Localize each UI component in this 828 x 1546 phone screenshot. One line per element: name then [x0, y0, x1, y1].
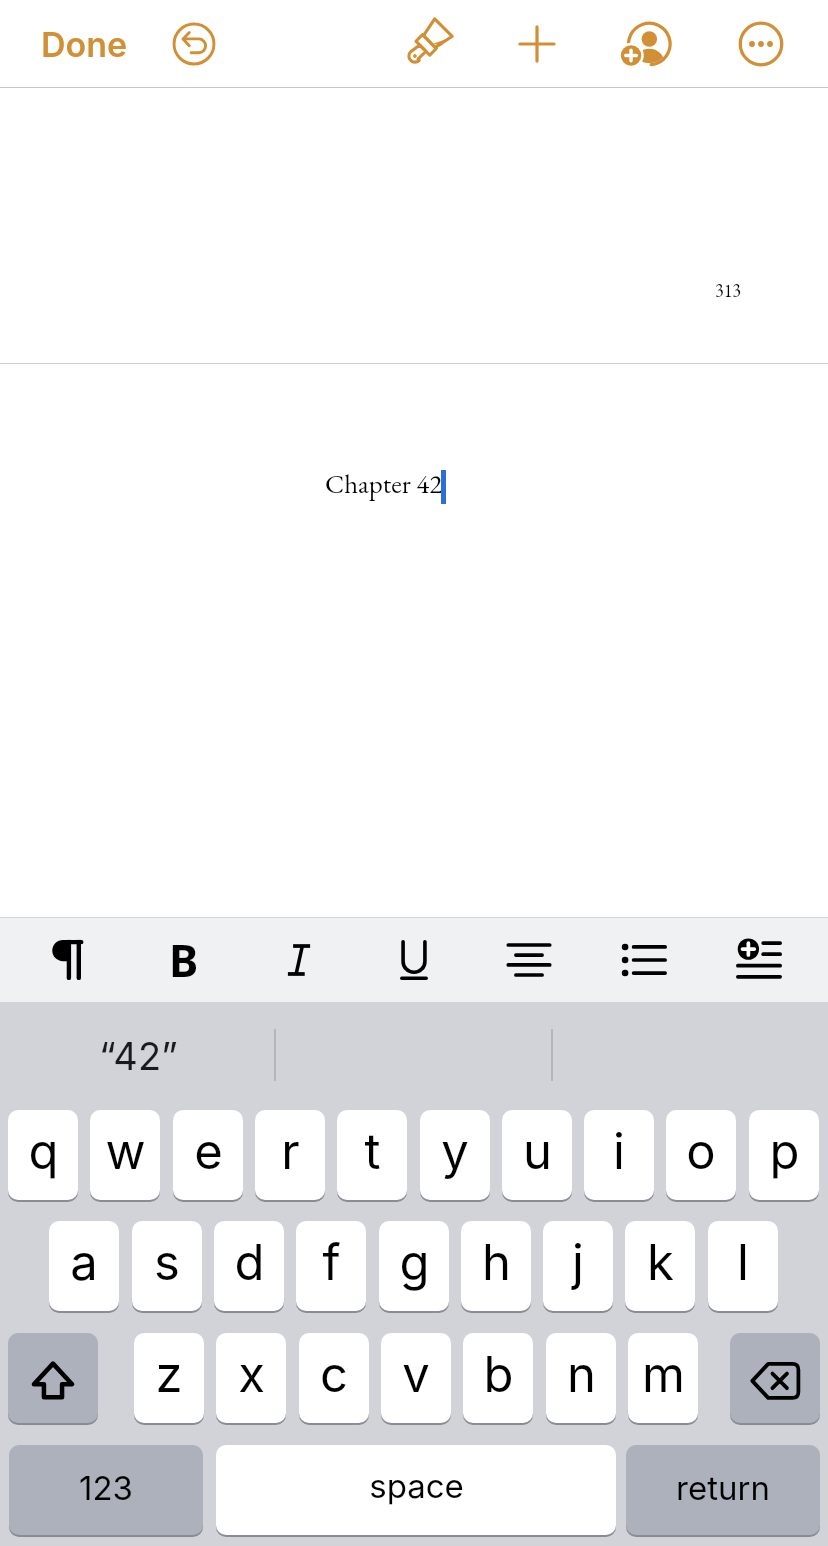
button[interactable]: z	[134, 1333, 204, 1423]
button[interactable]: e	[173, 1110, 243, 1200]
button[interactable]: x	[216, 1333, 286, 1423]
button[interactable]: m	[628, 1333, 698, 1423]
staticText: p	[769, 1122, 800, 1181]
button[interactable]: Bold	[127, 917, 241, 1002]
staticText: d	[234, 1233, 265, 1292]
staticText: B	[169, 930, 199, 990]
staticText: c	[320, 1345, 348, 1404]
staticText: Chapter 42	[325, 466, 443, 501]
button[interactable]: n	[546, 1333, 616, 1423]
staticText: o	[686, 1122, 716, 1181]
button[interactable]: b	[463, 1333, 533, 1423]
staticText: 313	[715, 279, 741, 302]
button[interactable]: More	[728, 11, 794, 77]
button[interactable]: r	[255, 1110, 325, 1200]
staticText: s	[154, 1233, 180, 1292]
staticText: h	[482, 1233, 511, 1292]
button[interactable]: c	[299, 1333, 369, 1423]
staticText: k	[647, 1233, 674, 1292]
button[interactable]: space	[216, 1445, 616, 1535]
button[interactable]: Insert	[504, 11, 570, 77]
button[interactable]: Bullet list	[587, 917, 701, 1002]
button[interactable]: Undo	[161, 11, 227, 77]
button[interactable]: i	[584, 1110, 654, 1200]
button[interactable]: h	[461, 1221, 531, 1311]
button[interactable]: j	[543, 1221, 613, 1311]
staticText: Done	[41, 24, 128, 65]
button[interactable]: Shift	[8, 1333, 98, 1423]
staticText: f	[322, 1233, 341, 1292]
button[interactable]: o	[666, 1110, 736, 1200]
button[interactable]: Paragraph style	[11, 917, 125, 1002]
staticText: j	[572, 1233, 584, 1292]
button[interactable]: v	[381, 1333, 451, 1423]
button[interactable]: Delete	[730, 1333, 820, 1423]
button[interactable]: Format	[394, 11, 460, 77]
staticText: g	[399, 1233, 430, 1292]
button[interactable]: p	[749, 1110, 819, 1200]
button[interactable]: k	[625, 1221, 695, 1311]
staticText: 123	[79, 1468, 133, 1508]
staticText: return	[676, 1468, 770, 1508]
staticText: z	[155, 1345, 183, 1404]
staticText: y	[441, 1122, 469, 1181]
button[interactable]: Italic	[242, 917, 356, 1002]
button[interactable]: return	[626, 1445, 820, 1535]
button[interactable]: Collaborate	[612, 11, 678, 77]
staticText: m	[642, 1345, 685, 1404]
button[interactable]: Align	[472, 917, 586, 1002]
button[interactable]: a	[49, 1221, 119, 1311]
button[interactable]: 123	[9, 1445, 203, 1535]
button[interactable]: u	[502, 1110, 572, 1200]
button[interactable]: f	[296, 1221, 366, 1311]
button[interactable]: w	[90, 1110, 160, 1200]
button[interactable]: y	[420, 1110, 490, 1200]
staticText: q	[28, 1122, 59, 1181]
staticText: v	[402, 1345, 430, 1404]
staticText: “42”	[99, 1033, 178, 1079]
staticText: r	[281, 1122, 300, 1181]
staticText: w	[105, 1122, 146, 1181]
staticText: l	[737, 1233, 749, 1292]
button[interactable]: Done	[41, 14, 128, 74]
staticText: i	[613, 1122, 625, 1181]
button[interactable]: l	[708, 1221, 778, 1311]
staticText: e	[194, 1122, 223, 1181]
staticText: a	[70, 1233, 98, 1292]
button[interactable]: d	[214, 1221, 284, 1311]
button[interactable]: Underline	[357, 917, 471, 1002]
staticText: u	[523, 1122, 552, 1181]
button[interactable]: s	[132, 1221, 202, 1311]
button[interactable]: g	[379, 1221, 449, 1311]
button[interactable]: q	[8, 1110, 78, 1200]
staticText: x	[238, 1345, 265, 1404]
staticText: t	[364, 1122, 381, 1181]
staticText: b	[483, 1345, 514, 1404]
button[interactable]: Add list item	[702, 917, 816, 1002]
staticText: space	[369, 1466, 464, 1506]
staticText: n	[567, 1345, 596, 1404]
button[interactable]: t	[337, 1110, 407, 1200]
